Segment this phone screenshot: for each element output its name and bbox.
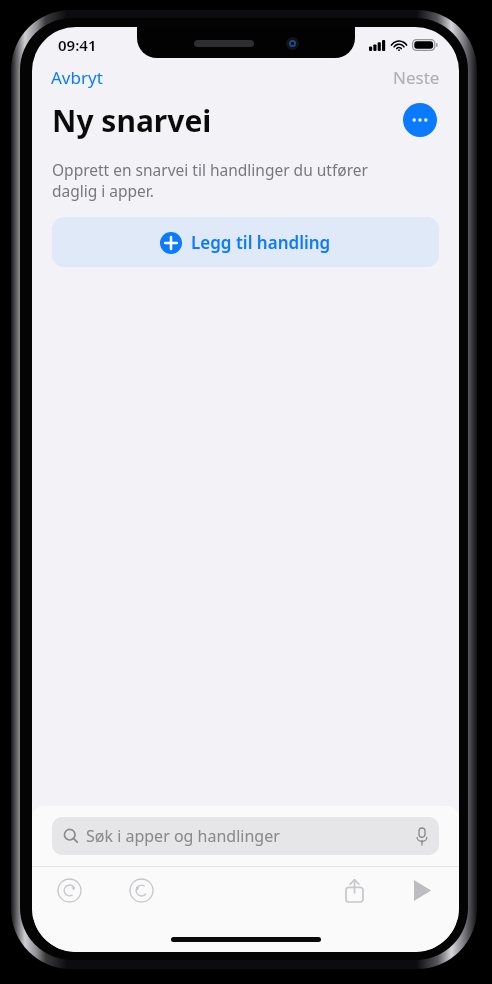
button[interactable]: Avbryt — [32, 62, 115, 93]
button[interactable]: Legg til handling — [52, 217, 439, 267]
button[interactable]: Kjør — [400, 868, 444, 912]
staticText: Legg til handling — [191, 231, 331, 254]
staticText: 09:41 — [58, 35, 97, 55]
staticText: Søk i apper og handlinger — [86, 825, 280, 847]
button[interactable]: Gjør om — [119, 868, 163, 912]
staticText: Ny snarvei — [52, 100, 212, 141]
button[interactable]: Angre — [47, 868, 91, 912]
button[interactable]: Flere valg — [403, 103, 437, 137]
staticText: Neste — [393, 66, 440, 89]
staticText: Opprett en snarvei til handlinger du utf… — [52, 159, 368, 202]
staticText: Avbryt — [51, 66, 103, 89]
button[interactable]: Del — [332, 868, 376, 912]
button[interactable]: Søk i apper og handlinger — [52, 817, 439, 855]
button[interactable]: Neste — [381, 62, 459, 93]
